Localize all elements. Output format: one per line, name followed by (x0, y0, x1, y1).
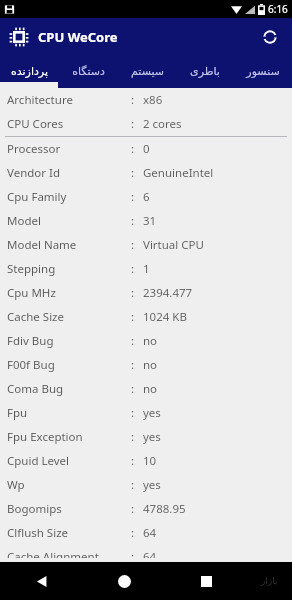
staticText: no (143, 381, 158, 397)
button[interactable]: Cpu Family (0, 185, 292, 209)
staticText: Coma Bug (7, 381, 64, 397)
staticText: : (131, 333, 135, 349)
staticText: 64 (143, 549, 157, 558)
staticText: CPU WeCore (38, 28, 118, 46)
staticText: باطری (190, 65, 220, 78)
button[interactable]: Recent apps (165, 562, 247, 600)
button[interactable]: Fpu Exception (0, 425, 292, 449)
staticText: 10 (143, 453, 157, 469)
staticText: : (131, 165, 135, 181)
button[interactable]: Model Name (0, 233, 292, 257)
staticText: Cpu Family (7, 189, 67, 205)
staticText: 1 (143, 261, 150, 277)
staticText: : (131, 429, 135, 445)
button[interactable]: دستگاه (59, 55, 118, 88)
button[interactable]: Clflush Size (0, 521, 292, 545)
staticText: : (131, 189, 135, 205)
button[interactable]: باطری (176, 55, 234, 88)
staticText: Cache Size (7, 309, 64, 325)
staticText: Fdiv Bug (7, 333, 54, 349)
staticText: سیستم (131, 65, 164, 78)
staticText: Architecture (7, 92, 73, 108)
button[interactable]: Architecture (0, 88, 292, 112)
staticText: F00f Bug (7, 357, 55, 373)
staticText: : (131, 501, 135, 517)
button[interactable]: Processor (0, 137, 292, 161)
staticText: Vendor Id (7, 165, 61, 181)
staticText: : (131, 285, 135, 301)
staticText: 31 (143, 213, 157, 229)
staticText: yes (143, 405, 161, 421)
button[interactable]: Cache Size (0, 305, 292, 329)
staticText: Model Name (7, 237, 77, 253)
staticText: 2394.477 (143, 285, 193, 301)
button[interactable]: Home (83, 562, 165, 600)
staticText: : (131, 381, 135, 397)
staticText: : (131, 549, 135, 558)
button[interactable]: Fpu (0, 401, 292, 425)
button[interactable]: Model (0, 209, 292, 233)
button[interactable]: سنسور (234, 55, 292, 88)
staticText: : (131, 405, 135, 421)
staticText: Cpu MHz (7, 285, 56, 301)
staticText: : (131, 213, 135, 229)
button[interactable]: F00f Bug (0, 353, 292, 377)
button[interactable]: Stepping (0, 257, 292, 281)
staticText: Stepping (7, 261, 56, 277)
staticText: بازار (261, 576, 278, 586)
staticText: Clflush Size (7, 525, 69, 541)
button[interactable]: Cache Alignment (0, 545, 292, 562)
button[interactable]: Cpu MHz (0, 281, 292, 305)
button[interactable]: Fdiv Bug (0, 329, 292, 353)
staticText: : (131, 141, 135, 157)
button[interactable]: Bogomips (0, 497, 292, 521)
staticText: : (131, 525, 135, 541)
staticText: Model (7, 213, 41, 229)
staticText: yes (143, 429, 161, 445)
staticText: : (131, 309, 135, 325)
staticText: : (131, 116, 135, 132)
staticText: : (131, 357, 135, 373)
staticText: GenuineIntel (143, 165, 214, 181)
button[interactable]: Cpuid Level (0, 449, 292, 473)
staticText: 6 (143, 189, 150, 205)
staticText: : (131, 261, 135, 277)
button[interactable]: پردازنده (0, 55, 59, 88)
staticText: Fpu Exception (7, 429, 83, 445)
staticText: 6:16 (268, 2, 288, 16)
button[interactable]: Refresh (256, 23, 284, 51)
staticText: no (143, 357, 158, 373)
staticText: Virtual CPU (143, 237, 204, 253)
button[interactable]: Wp (0, 473, 292, 497)
staticText: 64 (143, 525, 157, 541)
staticText: CPU Cores (7, 116, 64, 132)
staticText: سنسور (246, 65, 280, 78)
staticText: Fpu (7, 405, 28, 421)
staticText: : (131, 453, 135, 469)
button[interactable]: Back (0, 562, 83, 600)
staticText: 0 (143, 141, 150, 157)
button[interactable]: Coma Bug (0, 377, 292, 401)
staticText: : (131, 92, 135, 108)
button[interactable]: Vendor Id (0, 161, 292, 185)
staticText: no (143, 333, 158, 349)
button[interactable]: سیستم (118, 55, 176, 88)
staticText: پردازنده (11, 65, 48, 78)
staticText: Wp (7, 477, 25, 493)
staticText: x86 (143, 92, 163, 108)
staticText: Cache Alignment (7, 549, 99, 558)
staticText: : (131, 477, 135, 493)
staticText: 2 cores (143, 116, 182, 132)
staticText: 4788.95 (143, 501, 186, 517)
staticText: : (131, 237, 135, 253)
staticText: Bogomips (7, 501, 62, 517)
staticText: 1024 KB (143, 309, 187, 325)
staticText: yes (143, 477, 161, 493)
staticText: Processor (7, 141, 61, 157)
staticText: Cpuid Level (7, 453, 70, 469)
staticText: دستگاه (72, 65, 105, 78)
button[interactable]: CPU Cores (0, 112, 292, 136)
